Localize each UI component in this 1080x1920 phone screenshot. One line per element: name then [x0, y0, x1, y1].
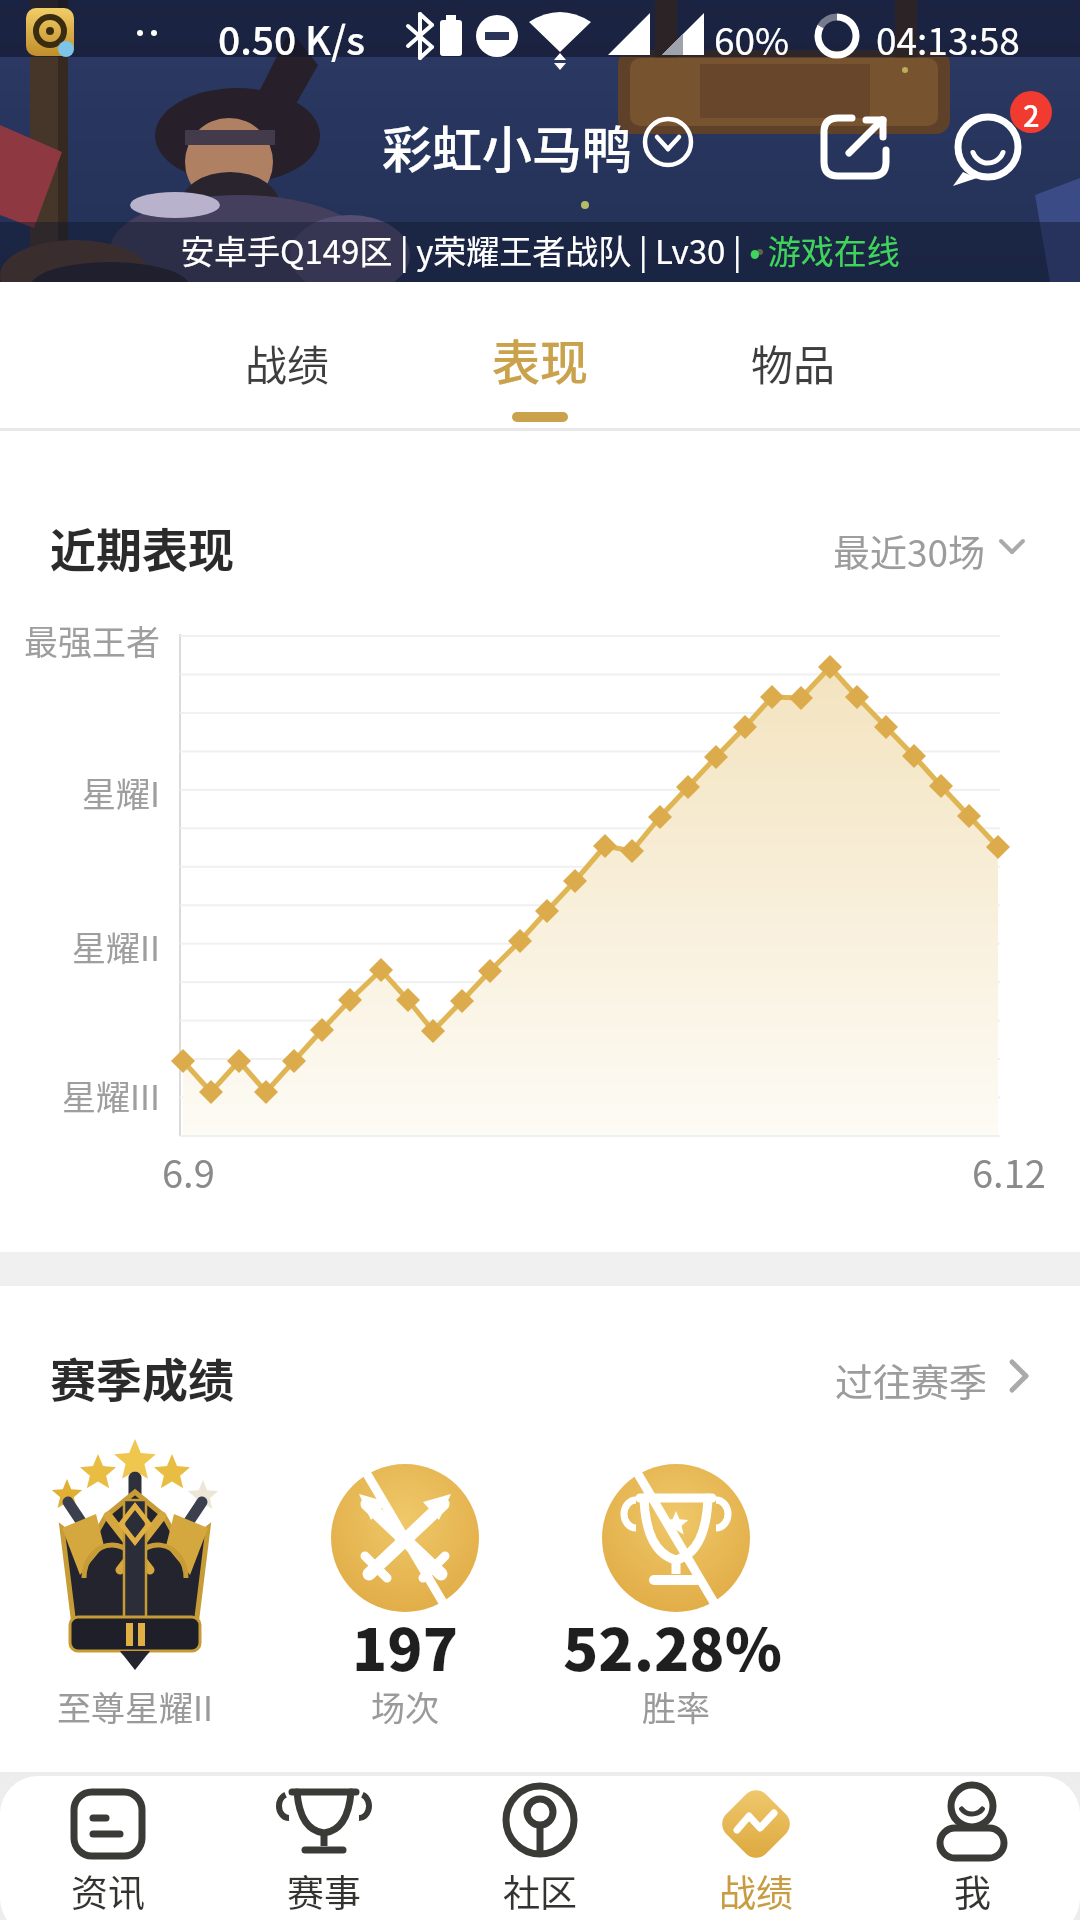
staticText: 彩虹小马鸭 — [382, 110, 632, 182]
staticText: 至尊星耀II — [57, 1682, 213, 1731]
button[interactable] — [882, 1778, 1062, 1918]
staticText: 2 — [1023, 93, 1040, 135]
button[interactable] — [234, 1778, 414, 1918]
staticText: 近期表现 — [50, 514, 234, 581]
button[interactable] — [18, 1778, 198, 1918]
staticText: 表现 — [492, 324, 589, 394]
staticText: 社区 — [503, 1864, 577, 1918]
staticText: 星耀III — [62, 1071, 160, 1120]
button[interactable] — [450, 1778, 630, 1918]
staticText: 星耀II — [72, 922, 160, 971]
staticText: 战绩 — [719, 1864, 793, 1918]
button[interactable] — [820, 1342, 1035, 1407]
staticText: 战绩 — [245, 332, 330, 393]
staticText: 赛事 — [287, 1864, 361, 1918]
staticText: 6.9 — [162, 1144, 215, 1199]
staticText: 物品 — [751, 332, 836, 393]
staticText: 60% — [714, 12, 790, 66]
button[interactable] — [468, 295, 613, 425]
staticText: 最强王者 — [24, 616, 160, 665]
staticText: 安卓手Q149区 | y荣耀王者战队 | Lv30 | • 游戏在线 — [181, 226, 900, 274]
staticText: 资讯 — [71, 1864, 145, 1918]
staticText: 6.12 — [972, 1144, 1046, 1199]
staticText: 过往赛季 — [835, 1352, 988, 1407]
button[interactable] — [820, 515, 1035, 580]
staticText: 胜率 — [642, 1682, 710, 1731]
staticText: 我 — [954, 1864, 991, 1918]
button[interactable] — [733, 300, 853, 425]
staticText: 星耀I — [82, 768, 160, 817]
button[interactable] — [230, 300, 350, 425]
staticText: 52.28% — [563, 1604, 782, 1688]
staticText: 场次 — [371, 1682, 439, 1731]
staticText: 04:13:58 — [876, 12, 1020, 66]
button[interactable] — [810, 100, 905, 190]
button[interactable] — [380, 100, 700, 180]
staticText: 最近30场 — [833, 524, 986, 578]
button[interactable] — [666, 1778, 846, 1918]
staticText: 赛季成绩 — [50, 1344, 234, 1411]
staticText: 197 — [352, 1604, 458, 1688]
staticText: 0.50 K/s — [218, 10, 365, 66]
button[interactable] — [940, 90, 1060, 190]
